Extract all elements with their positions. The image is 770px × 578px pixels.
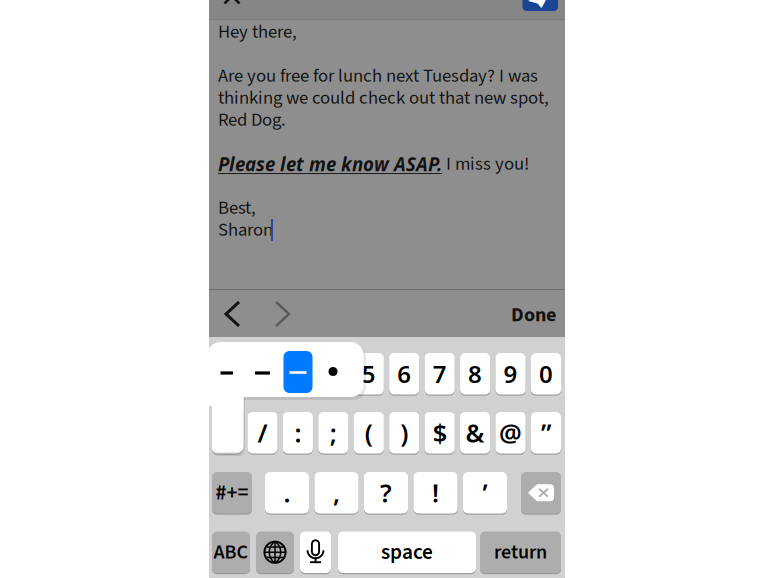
button[interactable]: 6	[0, 0, 770, 578]
button[interactable]: ”	[0, 0, 770, 578]
button[interactable]: ?	[0, 0, 770, 578]
staticText: (	[365, 415, 373, 450]
button[interactable]: ,	[0, 0, 770, 578]
button[interactable]: @	[0, 0, 770, 578]
button[interactable]: return	[0, 0, 770, 578]
staticText: ;	[330, 415, 337, 450]
button[interactable]: 3	[0, 0, 770, 578]
staticText: ’	[482, 475, 487, 510]
button[interactable]: ;	[0, 0, 770, 578]
staticText: 7	[433, 357, 447, 390]
staticText: return	[494, 538, 547, 566]
staticText: ABC	[213, 538, 248, 566]
staticText: ?	[380, 475, 392, 510]
staticText: Done	[511, 301, 556, 329]
button[interactable]: ’	[0, 0, 770, 578]
staticText: 1	[220, 357, 234, 390]
button[interactable]: 2	[0, 0, 770, 578]
button[interactable]: 8	[0, 0, 770, 578]
button[interactable]: .	[0, 0, 770, 578]
button[interactable]: #+=	[0, 0, 770, 578]
button[interactable]: $	[0, 0, 770, 578]
button[interactable]: Previous field	[0, 0, 770, 578]
staticText: #+=	[215, 478, 248, 508]
staticText: Red Dog.	[218, 107, 286, 133]
staticText: Best,	[218, 195, 256, 221]
staticText: 2	[255, 357, 269, 390]
button[interactable]: 9	[0, 0, 770, 578]
staticText: 6	[397, 357, 411, 390]
button[interactable]: 4	[0, 0, 770, 578]
staticText: space	[381, 537, 433, 567]
button[interactable]: (	[0, 0, 770, 578]
button[interactable]: &	[0, 0, 770, 578]
button[interactable]: 7	[0, 0, 770, 578]
button[interactable]: Delete	[0, 0, 770, 578]
staticText: :	[294, 415, 301, 450]
button[interactable]: Done	[0, 0, 770, 578]
staticText: )	[400, 415, 408, 450]
staticText: 5	[362, 357, 376, 390]
staticText: Sharon	[218, 217, 273, 243]
staticText: /	[257, 415, 267, 450]
button[interactable]: 5	[0, 0, 770, 578]
staticText: Are you free for lunch next Tuesday? I w…	[218, 63, 538, 89]
staticText: 9	[503, 357, 517, 390]
button[interactable]: Send	[0, 0, 770, 578]
staticText: Hey there,	[218, 19, 297, 45]
button[interactable]: 1	[0, 0, 770, 578]
staticText: !	[432, 475, 439, 510]
staticText: 8	[468, 357, 482, 390]
staticText: thinking we could check out that new spo…	[218, 85, 549, 111]
staticText: 3	[291, 357, 305, 390]
staticText: $	[433, 415, 447, 450]
staticText: 0	[539, 357, 553, 390]
staticText: 4	[326, 357, 340, 390]
staticText: Please let me know ASAP.	[218, 151, 442, 177]
staticText: I miss you!	[442, 151, 529, 177]
staticText: ,	[333, 475, 340, 510]
button[interactable]: Cancel	[0, 0, 770, 578]
staticText: ”	[541, 415, 551, 450]
button[interactable]: !	[0, 0, 770, 578]
staticText: .	[283, 475, 290, 510]
button[interactable]: space	[0, 0, 770, 578]
button[interactable]: Next keyboard	[0, 0, 770, 578]
button[interactable]: Dictate	[0, 0, 770, 578]
button[interactable]: -	[0, 0, 770, 578]
button[interactable]: Next field	[0, 0, 770, 578]
staticText: @	[499, 415, 522, 450]
button[interactable]: :	[0, 0, 770, 578]
staticText: &	[466, 415, 485, 450]
button[interactable]: /	[0, 0, 770, 578]
button[interactable]: )	[0, 0, 770, 578]
button[interactable]: 0	[0, 0, 770, 578]
button[interactable]: ABC	[0, 0, 770, 578]
